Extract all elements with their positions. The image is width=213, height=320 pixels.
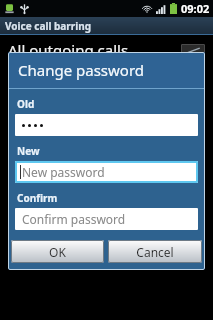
staticText: Old	[17, 97, 35, 111]
button[interactable]: All outgoing calls	[0, 35, 213, 65]
staticText: 09:02	[181, 1, 210, 16]
button[interactable]: New password	[15, 161, 198, 183]
staticText: New	[17, 144, 40, 158]
staticText: All outgoing calls	[8, 40, 181, 60]
button[interactable]: OK	[11, 240, 104, 263]
staticText: Cancel	[136, 244, 174, 260]
staticText: OK	[49, 244, 66, 260]
staticText: Confirm password	[22, 211, 126, 227]
staticText: New password	[22, 164, 105, 180]
staticText: Confirm	[17, 191, 58, 205]
staticText: Change password	[18, 60, 145, 80]
button[interactable]	[15, 114, 198, 136]
button[interactable]: Toggle all outgoing calls	[181, 44, 205, 57]
staticText: Voice call barring	[5, 19, 92, 33]
button[interactable]: Confirm password	[15, 208, 198, 230]
button[interactable]: Cancel	[108, 240, 202, 263]
